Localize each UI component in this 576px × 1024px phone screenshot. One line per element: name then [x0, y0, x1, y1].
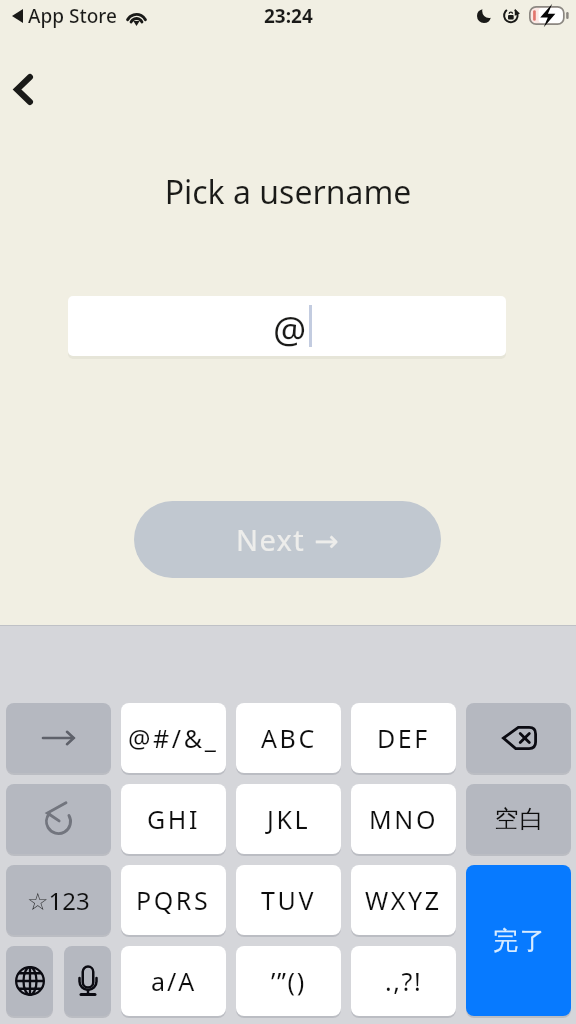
- button[interactable]: JKL: [236, 784, 341, 854]
- button[interactable]: @#/&_: [121, 703, 226, 773]
- button[interactable]: .,?!: [351, 946, 456, 1016]
- staticText: WXYZ: [365, 883, 442, 917]
- button[interactable]: 完了: [466, 865, 571, 1016]
- staticText: 完了: [492, 925, 546, 956]
- button[interactable]: Undo: [6, 784, 111, 854]
- staticText: DEF: [377, 721, 430, 755]
- button[interactable]: @: [68, 296, 506, 356]
- staticText: GHI: [147, 802, 201, 836]
- button[interactable]: ’”(): [236, 946, 341, 1016]
- button[interactable]: Switch keyboard: [6, 946, 53, 1016]
- button[interactable]: Back: [0, 61, 56, 117]
- button[interactable]: ABC: [236, 703, 341, 773]
- button[interactable]: 空白: [466, 784, 571, 854]
- button[interactable]: a/A: [121, 946, 226, 1016]
- button[interactable]: DEF: [351, 703, 456, 773]
- staticText: .,?!: [385, 964, 423, 998]
- button[interactable]: Next field: [6, 703, 111, 773]
- button[interactable]: PQRS: [121, 865, 226, 935]
- staticText: 空白: [494, 804, 544, 834]
- staticText: PQRS: [136, 883, 211, 917]
- button[interactable]: MNO: [351, 784, 456, 854]
- staticText: Pick a username: [0, 170, 576, 214]
- staticText: ☆123: [27, 884, 90, 917]
- staticText: MNO: [369, 802, 439, 836]
- staticText: Next →: [236, 520, 340, 559]
- button[interactable]: GHI: [121, 784, 226, 854]
- staticText: TUV: [261, 883, 316, 917]
- staticText: @: [273, 303, 307, 353]
- staticText: @#/&_: [128, 721, 219, 755]
- staticText: ABC: [261, 721, 317, 755]
- button[interactable]: Next →: [134, 501, 441, 578]
- staticText: a/A: [151, 964, 197, 998]
- staticText: 23:24: [264, 3, 313, 29]
- button[interactable]: ☆123: [6, 865, 111, 935]
- staticText: JKL: [267, 802, 311, 836]
- button[interactable]: WXYZ: [351, 865, 456, 935]
- button[interactable]: Dictation: [64, 946, 111, 1016]
- staticText: App Store: [28, 3, 117, 29]
- button[interactable]: Delete: [466, 703, 571, 773]
- button[interactable]: TUV: [236, 865, 341, 935]
- staticText: ’”(): [271, 964, 306, 998]
